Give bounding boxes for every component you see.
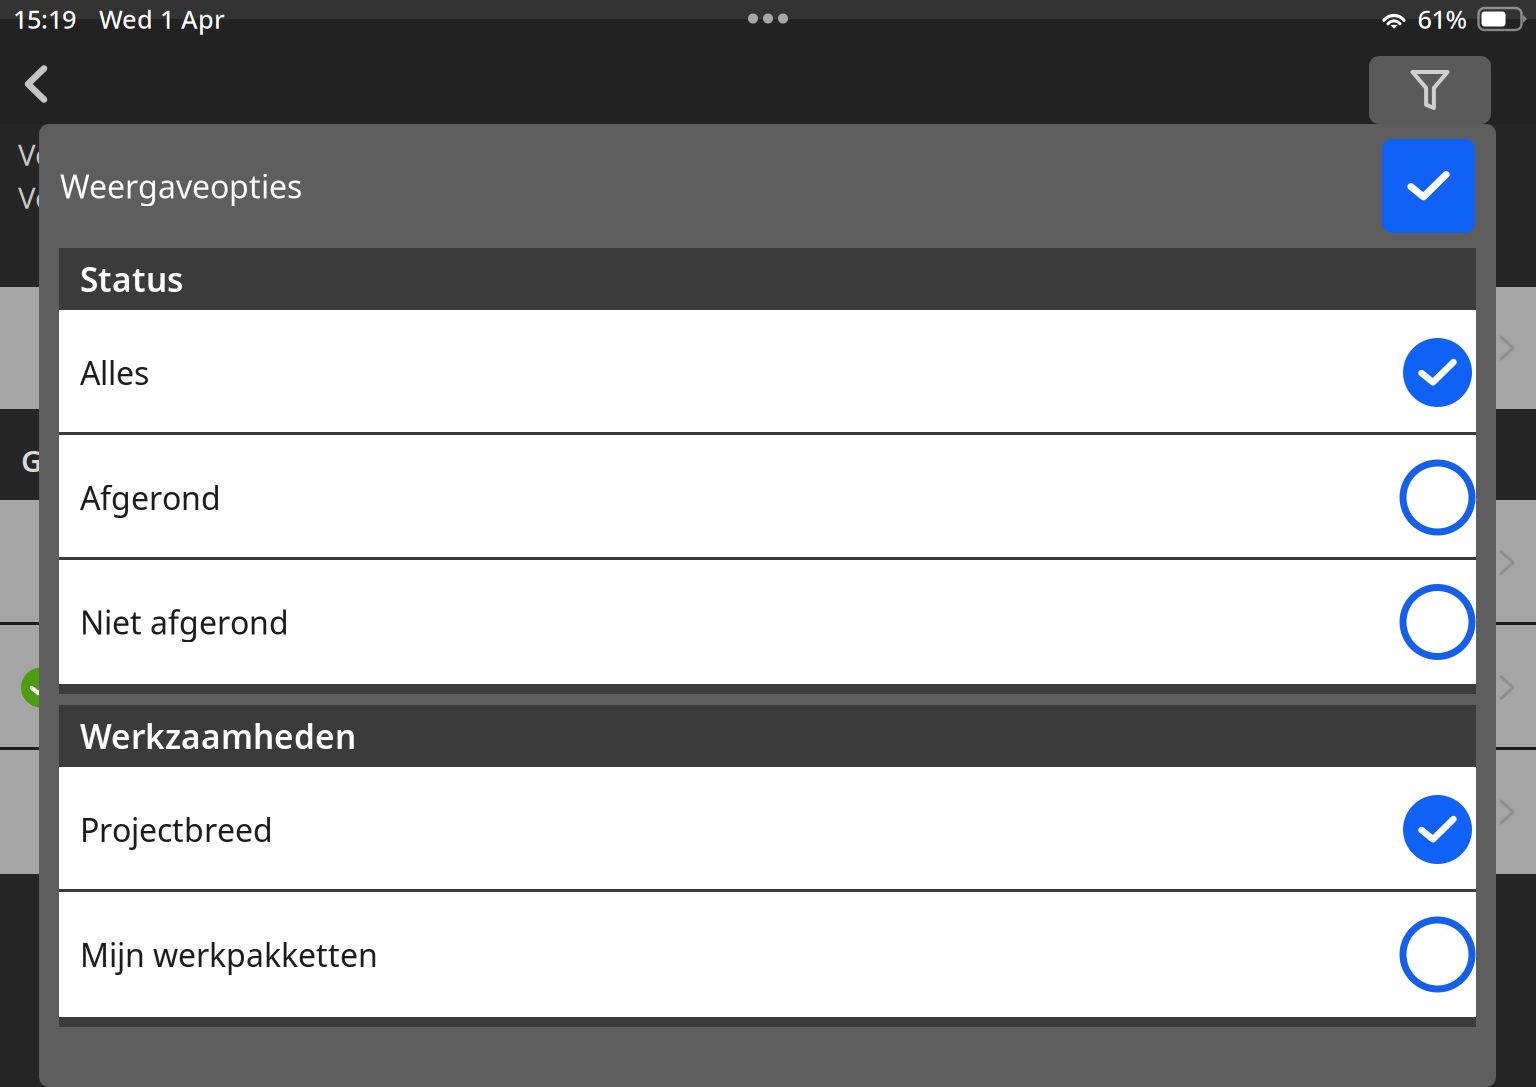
staticText: Status — [80, 257, 183, 301]
button[interactable]: Done — [1382, 139, 1475, 233]
staticText: Gereedmeldingen — [21, 441, 275, 480]
staticText: Werkzaamheden — [80, 714, 356, 758]
staticText: Weergaveopties — [60, 165, 302, 207]
button[interactable]: Projectbreed — [59, 767, 1476, 892]
button[interactable]: Back — [0, 44, 72, 124]
staticText: Afgerond — [80, 476, 221, 519]
staticText: Voorbeeldproject fase 2 — [18, 135, 349, 174]
staticText: Alles — [80, 351, 149, 394]
staticText: 61% — [1417, 2, 1467, 36]
staticText: Mijn werkpakketten — [80, 933, 378, 976]
button[interactable]: Alles — [59, 310, 1476, 435]
button[interactable]: Filter — [1369, 56, 1491, 124]
staticText: Voortgang werkzaamheden — [18, 178, 401, 217]
button[interactable]: Afgerond — [59, 435, 1476, 560]
button[interactable]: Mijn werkpakketten — [59, 892, 1476, 1017]
staticText: Projectbreed — [80, 808, 273, 851]
button[interactable]: Niet afgerond — [59, 560, 1476, 684]
staticText: 15:19 — [13, 2, 76, 36]
staticText: Niet afgerond — [80, 601, 289, 643]
staticText: Wed 1 Apr — [99, 2, 225, 36]
